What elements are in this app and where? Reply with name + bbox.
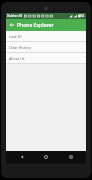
staticText: About Us: [9, 56, 25, 61]
button[interactable]: Love It?: [6, 31, 86, 41]
button[interactable]: Clear History: [6, 42, 86, 52]
button[interactable]: Recents: [62, 151, 80, 162]
button[interactable]: Back: [6, 19, 17, 31]
staticText: Vodafone IN: [7, 14, 23, 18]
staticText: 7:04: [79, 14, 85, 18]
staticText: Phone Explorer: [17, 22, 54, 29]
button[interactable]: Back: [13, 151, 31, 162]
button[interactable]: Home: [37, 151, 55, 162]
staticText: Clear History: [9, 45, 31, 50]
staticText: Love It?: [9, 34, 22, 39]
button[interactable]: About Us: [6, 53, 86, 63]
